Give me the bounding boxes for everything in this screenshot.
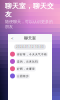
staticText: 是的，出来玩吗 — [17, 60, 38, 63]
staticText: 公园散步 — [17, 74, 29, 78]
staticText: 你好呀，今天天气不错 — [17, 53, 47, 56]
staticText: 聊天室 — [24, 36, 36, 40]
staticText: 2024-01-12 10:30 — [16, 45, 44, 49]
button[interactable]: Back — [11, 35, 13, 41]
staticText: 好啊，去哪里 — [17, 67, 35, 70]
staticText: 随便聊天，可以认识更多的朋友 — [5, 19, 53, 29]
staticText: 聊天室，聊天交友 — [5, 2, 54, 18]
staticText: < — [11, 35, 13, 41]
